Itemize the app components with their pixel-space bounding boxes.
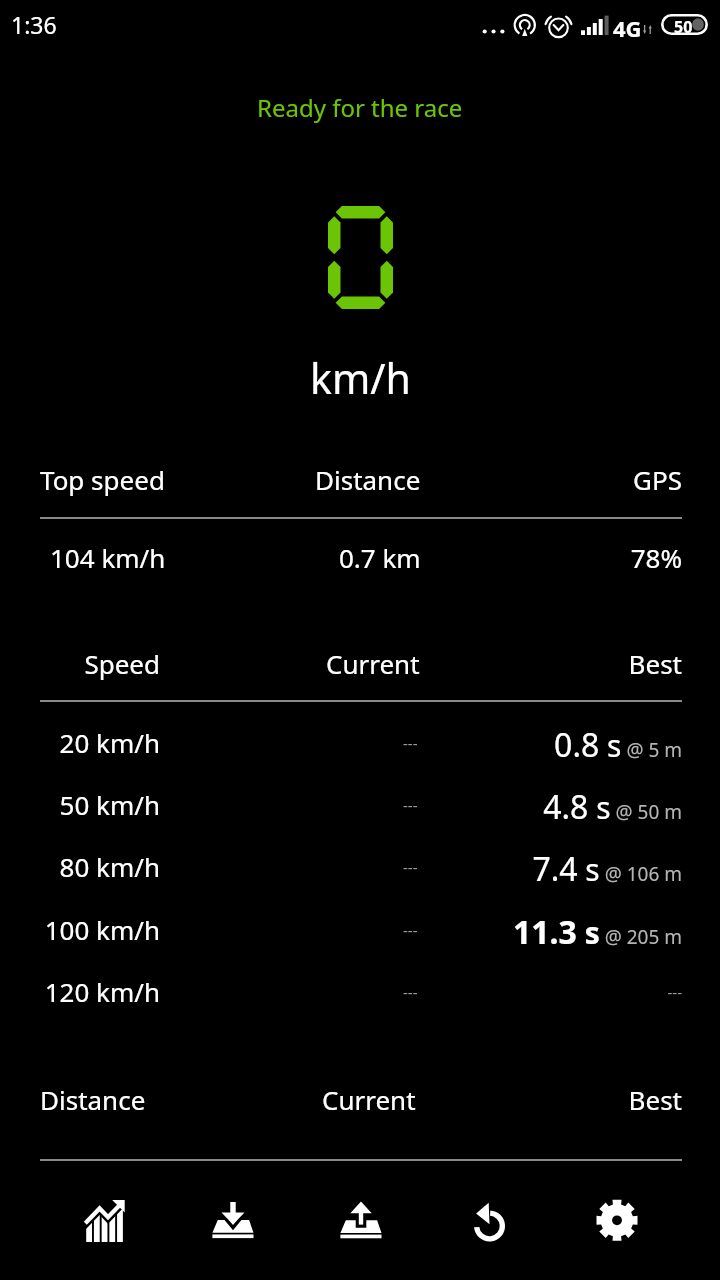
staticText: Ready for the race [257, 91, 463, 124]
staticText: 7.4 s @ 106 m [0, 847, 682, 891]
button[interactable]: Ready for the race [0, 86, 720, 132]
staticText: Distance [40, 1082, 146, 1117]
button[interactable]: Top speed [0, 452, 720, 514]
button[interactable]: Import [169, 1181, 297, 1280]
button[interactable]: 104 km/h [0, 528, 720, 584]
button[interactable]: Current speed 0 km/h [260, 180, 460, 410]
button[interactable]: Speed [0, 636, 720, 698]
button[interactable]: 50 km/h [0, 775, 720, 837]
button[interactable]: Statistics [41, 1181, 169, 1280]
button[interactable]: Export [297, 1181, 425, 1280]
staticText: 20 km/h [0, 725, 160, 760]
staticText: Distance [315, 462, 421, 497]
staticText: 50 [674, 16, 693, 37]
staticText: 4.8 s @ 50 m [0, 785, 682, 829]
staticText: --- [403, 982, 418, 1002]
staticText: Top speed [40, 462, 165, 497]
staticText: --- [403, 733, 418, 753]
staticText: 120 km/h [0, 974, 160, 1009]
staticText: --- [403, 920, 418, 940]
staticText: --- [403, 857, 418, 877]
button[interactable]: Distance [0, 1072, 720, 1134]
staticText: Speed [0, 646, 160, 681]
staticText: 0.7 km [339, 540, 421, 575]
staticText: 0.8 s @ 5 m [0, 723, 682, 767]
staticText: km/h [310, 350, 411, 406]
staticText: 100 km/h [0, 912, 160, 947]
button[interactable]: Reset [425, 1181, 553, 1280]
staticText: Current [322, 1082, 416, 1117]
staticText: 78% [0, 540, 682, 575]
staticText: 80 km/h [0, 849, 160, 884]
staticText: Best [0, 1082, 682, 1117]
button[interactable]: 100 km/h [0, 900, 720, 962]
button[interactable]: 120 km/h [0, 962, 720, 1024]
button[interactable]: Settings [553, 1181, 681, 1280]
staticText: 50 km/h [0, 787, 160, 822]
staticText: 11.3 s @ 205 m [0, 910, 682, 954]
staticText: 104 km/h [50, 540, 166, 575]
staticText: 1:36 [11, 9, 57, 40]
staticText: 4G [613, 13, 642, 43]
button[interactable]: 80 km/h [0, 837, 720, 899]
staticText: Best [0, 646, 682, 681]
staticText: GPS [0, 462, 682, 497]
staticText: --- [403, 795, 418, 815]
staticText: Current [326, 646, 420, 681]
button[interactable]: 20 km/h [0, 713, 720, 775]
staticText: --- [0, 982, 682, 1002]
